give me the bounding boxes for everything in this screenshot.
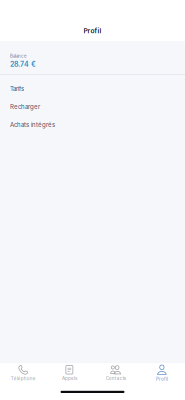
- button[interactable]: Appels: [46, 365, 92, 381]
- button[interactable]: Profil: [139, 364, 185, 382]
- staticText: Téléphone: [11, 376, 36, 381]
- staticText: Contacts: [106, 376, 126, 381]
- button[interactable]: Téléphone: [0, 365, 46, 381]
- staticText: Appels: [62, 376, 77, 381]
- staticText: 28.74 €: [10, 60, 36, 68]
- staticText: Tarifs: [10, 85, 24, 92]
- staticText: Profil: [156, 376, 168, 382]
- staticText: Achats intégrés: [10, 121, 55, 128]
- button[interactable]: Tarifs: [0, 80, 185, 98]
- staticText: Recharger: [10, 103, 40, 110]
- staticText: Profil: [83, 27, 101, 35]
- button[interactable]: Recharger: [0, 98, 185, 116]
- button[interactable]: Contacts: [92, 365, 139, 381]
- button[interactable]: Achats intégrés: [0, 116, 185, 134]
- staticText: Balance: [10, 53, 27, 59]
